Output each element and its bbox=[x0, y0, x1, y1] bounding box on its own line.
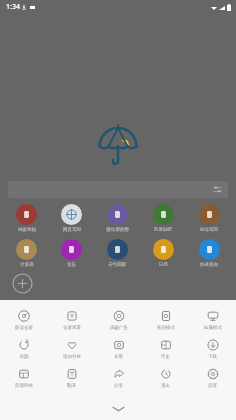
button[interactable]: Add bbox=[12, 273, 33, 294]
button[interactable]: 长图 bbox=[95, 335, 142, 364]
button[interactable]: 屏蔽广告 bbox=[95, 306, 142, 335]
staticText: 日历 bbox=[159, 262, 168, 268]
staticText: 计算器 bbox=[20, 262, 34, 268]
staticText: 翻译 bbox=[67, 383, 76, 389]
staticText: 网页写回 bbox=[63, 227, 81, 233]
staticText: 微信朋友圈 bbox=[106, 227, 129, 233]
staticText: 刷新 bbox=[20, 354, 29, 360]
staticText: 快递查询 bbox=[200, 262, 218, 268]
staticText: 全屏观看 bbox=[63, 325, 81, 331]
staticText: 设置 bbox=[208, 383, 217, 389]
button[interactable]: 历史 bbox=[142, 335, 189, 364]
button[interactable]: Filter bbox=[213, 185, 222, 194]
button[interactable]: 电脑模式 bbox=[189, 306, 236, 335]
button[interactable]: 天气提醒 bbox=[94, 237, 140, 270]
button[interactable]: 退出 bbox=[142, 364, 189, 393]
staticText: 退出 bbox=[161, 383, 170, 389]
staticText: 短信写回 bbox=[200, 227, 218, 233]
button[interactable]: 下载 bbox=[189, 335, 236, 364]
button[interactable]: 计算器 bbox=[4, 237, 49, 270]
staticText: 天气提醒 bbox=[108, 262, 126, 268]
button[interactable]: 朗读全屏 bbox=[0, 306, 48, 335]
button[interactable]: 刷新 bbox=[0, 335, 48, 364]
button[interactable]: 快递查询 bbox=[186, 237, 232, 270]
button[interactable]: 链接复制 bbox=[4, 202, 49, 235]
button[interactable]: 全屏观看 bbox=[48, 306, 95, 335]
button[interactable]: 页面风格 bbox=[0, 364, 48, 393]
staticText: 链接复制 bbox=[18, 227, 36, 233]
button[interactable]: 翻译 bbox=[48, 364, 95, 393]
button[interactable]: Filter bbox=[8, 181, 228, 198]
staticText: 分享 bbox=[114, 383, 123, 389]
staticText: 长图 bbox=[114, 354, 123, 360]
staticText: 屏蔽广告 bbox=[110, 325, 128, 331]
staticText: 电脑模式 bbox=[204, 325, 222, 331]
button[interactable]: 百度贴吧 bbox=[140, 202, 186, 235]
staticText: 百度贴吧 bbox=[154, 227, 172, 233]
staticText: 历史 bbox=[161, 354, 170, 360]
staticText: 添加书签 bbox=[63, 354, 81, 360]
button[interactable]: 网页写回 bbox=[49, 202, 94, 235]
staticText: 夜间模式 bbox=[157, 325, 175, 331]
button[interactable]: 设置 bbox=[189, 364, 236, 393]
staticText: 页面风格 bbox=[15, 383, 33, 389]
button[interactable]: 微信朋友圈 bbox=[94, 202, 140, 235]
staticText: 朗读全屏 bbox=[15, 325, 33, 331]
staticText: 音乐 bbox=[67, 262, 76, 268]
button[interactable]: 夜间模式 bbox=[142, 306, 189, 335]
button[interactable]: 音乐 bbox=[49, 237, 94, 270]
staticText: 下载 bbox=[208, 354, 217, 360]
button[interactable]: 分享 bbox=[95, 364, 142, 393]
button[interactable]: 添加书签 bbox=[48, 335, 95, 364]
staticText: 1:34 bbox=[6, 2, 20, 12]
button[interactable]: Collapse bbox=[0, 398, 236, 420]
button[interactable]: 日历 bbox=[140, 237, 186, 270]
button[interactable]: 短信写回 bbox=[186, 202, 232, 235]
